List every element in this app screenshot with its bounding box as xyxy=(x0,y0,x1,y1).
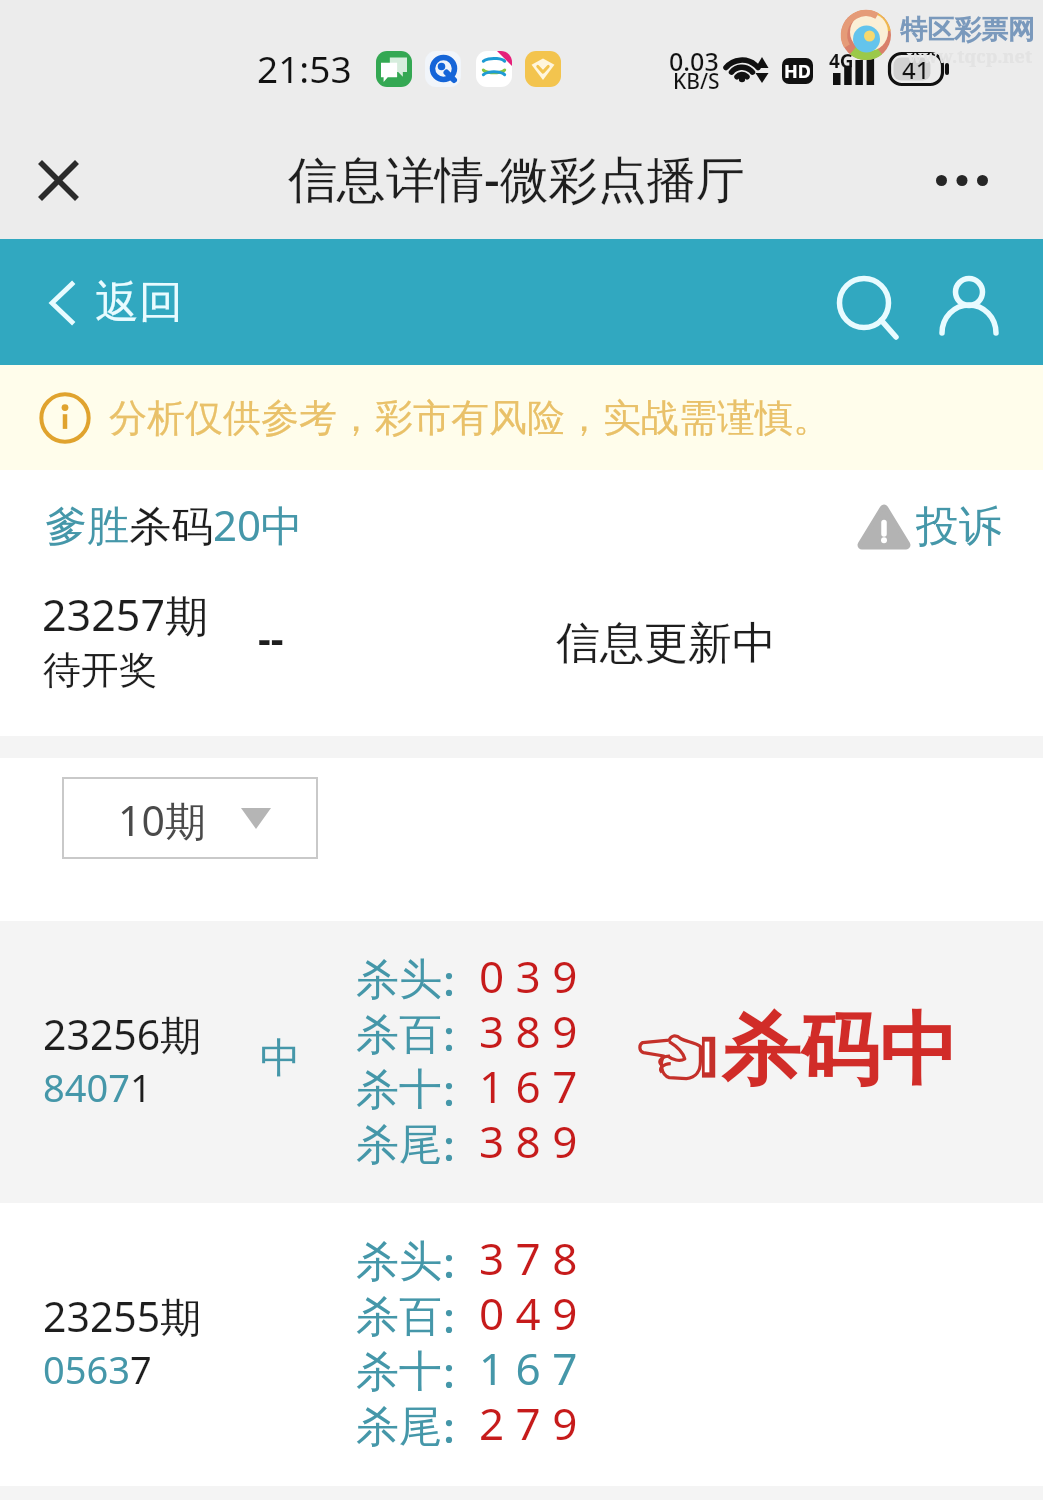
staticText: 1 6 7 xyxy=(479,1056,578,1116)
staticText: -- xyxy=(258,610,284,664)
staticText: 3 8 9 xyxy=(479,1001,578,1061)
staticText: 杀十 xyxy=(356,1345,442,1399)
staticText: 信息更新中 xyxy=(556,616,776,671)
staticText: www.tqcp.net xyxy=(907,44,1033,69)
button[interactable]: Search xyxy=(828,267,900,339)
button[interactable]: More options xyxy=(924,142,1000,218)
staticText: 0 3 9 xyxy=(479,946,578,1006)
staticText: 投诉 xyxy=(916,500,1002,554)
staticText: 05637 xyxy=(43,1343,152,1395)
staticText: 21:53 xyxy=(257,43,352,93)
button[interactable]: Close xyxy=(20,142,96,218)
staticText: 信息详情-微彩点播厅 xyxy=(288,145,745,212)
staticText: 10期 xyxy=(118,792,206,848)
staticText: 返回 xyxy=(95,275,183,330)
staticText: 23256期 xyxy=(43,1006,202,1062)
button[interactable]: 23255期 xyxy=(0,1203,1043,1486)
staticText: 待开奖 xyxy=(43,646,157,694)
staticText: 0.03 xyxy=(669,44,719,78)
staticText: 41 xyxy=(902,53,930,86)
staticText: 杀百 xyxy=(356,1008,442,1062)
staticText: HD xyxy=(784,59,811,84)
button[interactable]: 返回 xyxy=(50,275,183,330)
staticText: 84071 xyxy=(43,1061,152,1113)
staticText: 杀十 xyxy=(356,1063,442,1117)
staticText: 23257期 xyxy=(42,585,208,644)
staticText: 杀头 xyxy=(356,953,442,1007)
staticText: 3 7 8 xyxy=(479,1228,578,1288)
staticText: 0 4 9 xyxy=(479,1283,578,1343)
staticText: 杀码中 xyxy=(721,1001,958,1101)
button[interactable]: Profile xyxy=(938,267,1006,335)
button[interactable]: 23256期 xyxy=(0,921,1043,1203)
staticText: 分析仅供参考，彩市有风险，实战需谨慎。 xyxy=(109,394,831,442)
staticText: 杀头 xyxy=(356,1235,442,1289)
staticText: 爹胜杀码20中 xyxy=(45,496,304,553)
staticText: 特区彩票网 xyxy=(900,13,1035,47)
staticText: 4G xyxy=(829,48,854,74)
button[interactable]: 投诉 xyxy=(846,492,1016,560)
staticText: 2 7 9 xyxy=(479,1393,578,1453)
button[interactable]: 爹胜杀码20中 xyxy=(45,496,304,553)
staticText: 3 8 9 xyxy=(479,1111,578,1171)
staticText: 23255期 xyxy=(43,1288,202,1344)
staticText: 杀尾 xyxy=(356,1400,442,1454)
staticText: 杀百 xyxy=(356,1290,442,1344)
staticText: KB/S xyxy=(673,67,720,96)
staticText: 中 xyxy=(260,1033,301,1085)
staticText: 1 6 7 xyxy=(479,1338,578,1398)
button[interactable]: 10期 xyxy=(62,777,318,859)
staticText: 杀尾 xyxy=(356,1118,442,1172)
